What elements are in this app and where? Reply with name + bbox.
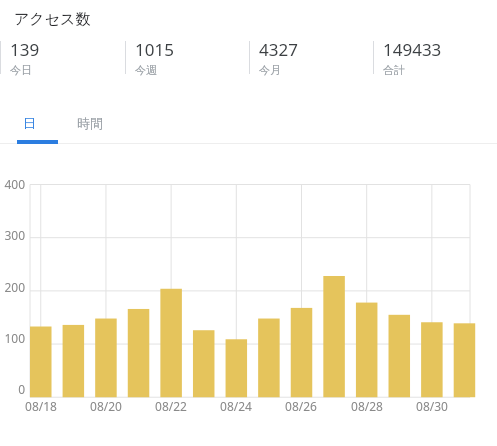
button[interactable]: 日 [0, 106, 58, 140]
staticText: 今日 [10, 63, 32, 77]
staticText: 08/20 [82, 398, 130, 414]
staticText: 139 [10, 38, 40, 61]
staticText: 300 [0, 227, 25, 243]
staticText: 08/18 [17, 398, 65, 414]
staticText: 100 [0, 330, 25, 346]
staticText: 4327 [259, 38, 298, 61]
staticText: 08/30 [408, 398, 456, 414]
staticText: 日 [23, 115, 36, 131]
staticText: 200 [0, 279, 25, 295]
staticText: 400 [0, 176, 25, 192]
staticText: アクセス数 [14, 10, 91, 29]
staticText: 08/24 [212, 398, 260, 414]
staticText: 時間 [77, 115, 103, 131]
staticText: 1015 [135, 38, 174, 61]
staticText: 今週 [135, 63, 157, 77]
staticText: 08/22 [147, 398, 195, 414]
staticText: 149433 [383, 38, 442, 61]
staticText: 今月 [259, 63, 281, 77]
button[interactable]: 時間 [58, 106, 122, 140]
staticText: 合計 [383, 63, 405, 77]
staticText: 0 [0, 381, 25, 397]
staticText: 08/26 [277, 398, 325, 414]
staticText: 08/28 [343, 398, 391, 414]
